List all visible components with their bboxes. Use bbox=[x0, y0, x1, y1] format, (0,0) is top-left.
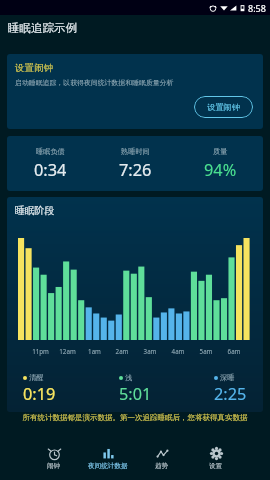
staticText: 设置闹钟 bbox=[207, 102, 241, 112]
button[interactable]: 设置闹钟 bbox=[194, 96, 253, 118]
staticText: 2:25 bbox=[214, 383, 247, 405]
staticText: 5:01 bbox=[119, 383, 152, 405]
button[interactable]: Trends bbox=[135, 436, 189, 480]
staticText: 5am bbox=[192, 347, 220, 355]
staticText: 设置闹钟 bbox=[15, 62, 53, 74]
staticText: 深睡 bbox=[220, 373, 235, 382]
staticText: 熟睡时间 bbox=[121, 147, 150, 156]
button[interactable]: 设置闹钟 bbox=[7, 54, 263, 129]
staticText: 11pm bbox=[27, 347, 54, 355]
staticText: 12am bbox=[54, 347, 81, 355]
button[interactable]: 浅 bbox=[119, 373, 152, 405]
staticText: 0:34 bbox=[34, 159, 67, 181]
button[interactable]: 深睡 bbox=[214, 373, 247, 405]
staticText: 1am bbox=[81, 347, 108, 355]
staticText: 4am bbox=[164, 347, 192, 355]
staticText: 8:58 bbox=[248, 2, 266, 14]
staticText: 闹钟 bbox=[47, 462, 61, 470]
staticText: 7:26 bbox=[119, 159, 152, 181]
staticText: 0:19 bbox=[23, 383, 56, 405]
button[interactable]: Alarm bbox=[27, 436, 81, 480]
staticText: 启动睡眠追踪，以获得夜间统计数据和睡眠质量分析 bbox=[15, 78, 174, 87]
staticText: 3am bbox=[136, 347, 164, 355]
button[interactable]: 清醒 bbox=[23, 373, 56, 405]
button[interactable]: 睡眠负债 bbox=[7, 136, 93, 191]
button[interactable]: 熟睡时间 bbox=[93, 136, 178, 191]
staticText: 质量 bbox=[213, 147, 228, 156]
staticText: 夜间统计数据 bbox=[88, 462, 128, 470]
staticText: 睡眠阶段 bbox=[15, 205, 55, 217]
staticText: 6am bbox=[220, 347, 248, 355]
staticText: 睡眠负债 bbox=[36, 147, 65, 156]
button[interactable]: Settings bbox=[189, 436, 243, 480]
staticText: 浅 bbox=[125, 373, 133, 382]
staticText: 清醒 bbox=[29, 373, 44, 382]
staticText: 趋势 bbox=[155, 462, 169, 470]
button[interactable]: Night stats bbox=[81, 436, 135, 480]
staticText: 所有统计数据都是演示数据。第一次追踪睡眠后，您将获得真实数据 bbox=[0, 413, 270, 422]
staticText: 2am bbox=[108, 347, 136, 355]
staticText: 94% bbox=[204, 159, 237, 181]
button[interactable]: 质量 bbox=[178, 136, 263, 191]
staticText: 设置 bbox=[209, 462, 223, 470]
staticText: 睡眠追踪示例 bbox=[8, 21, 77, 35]
